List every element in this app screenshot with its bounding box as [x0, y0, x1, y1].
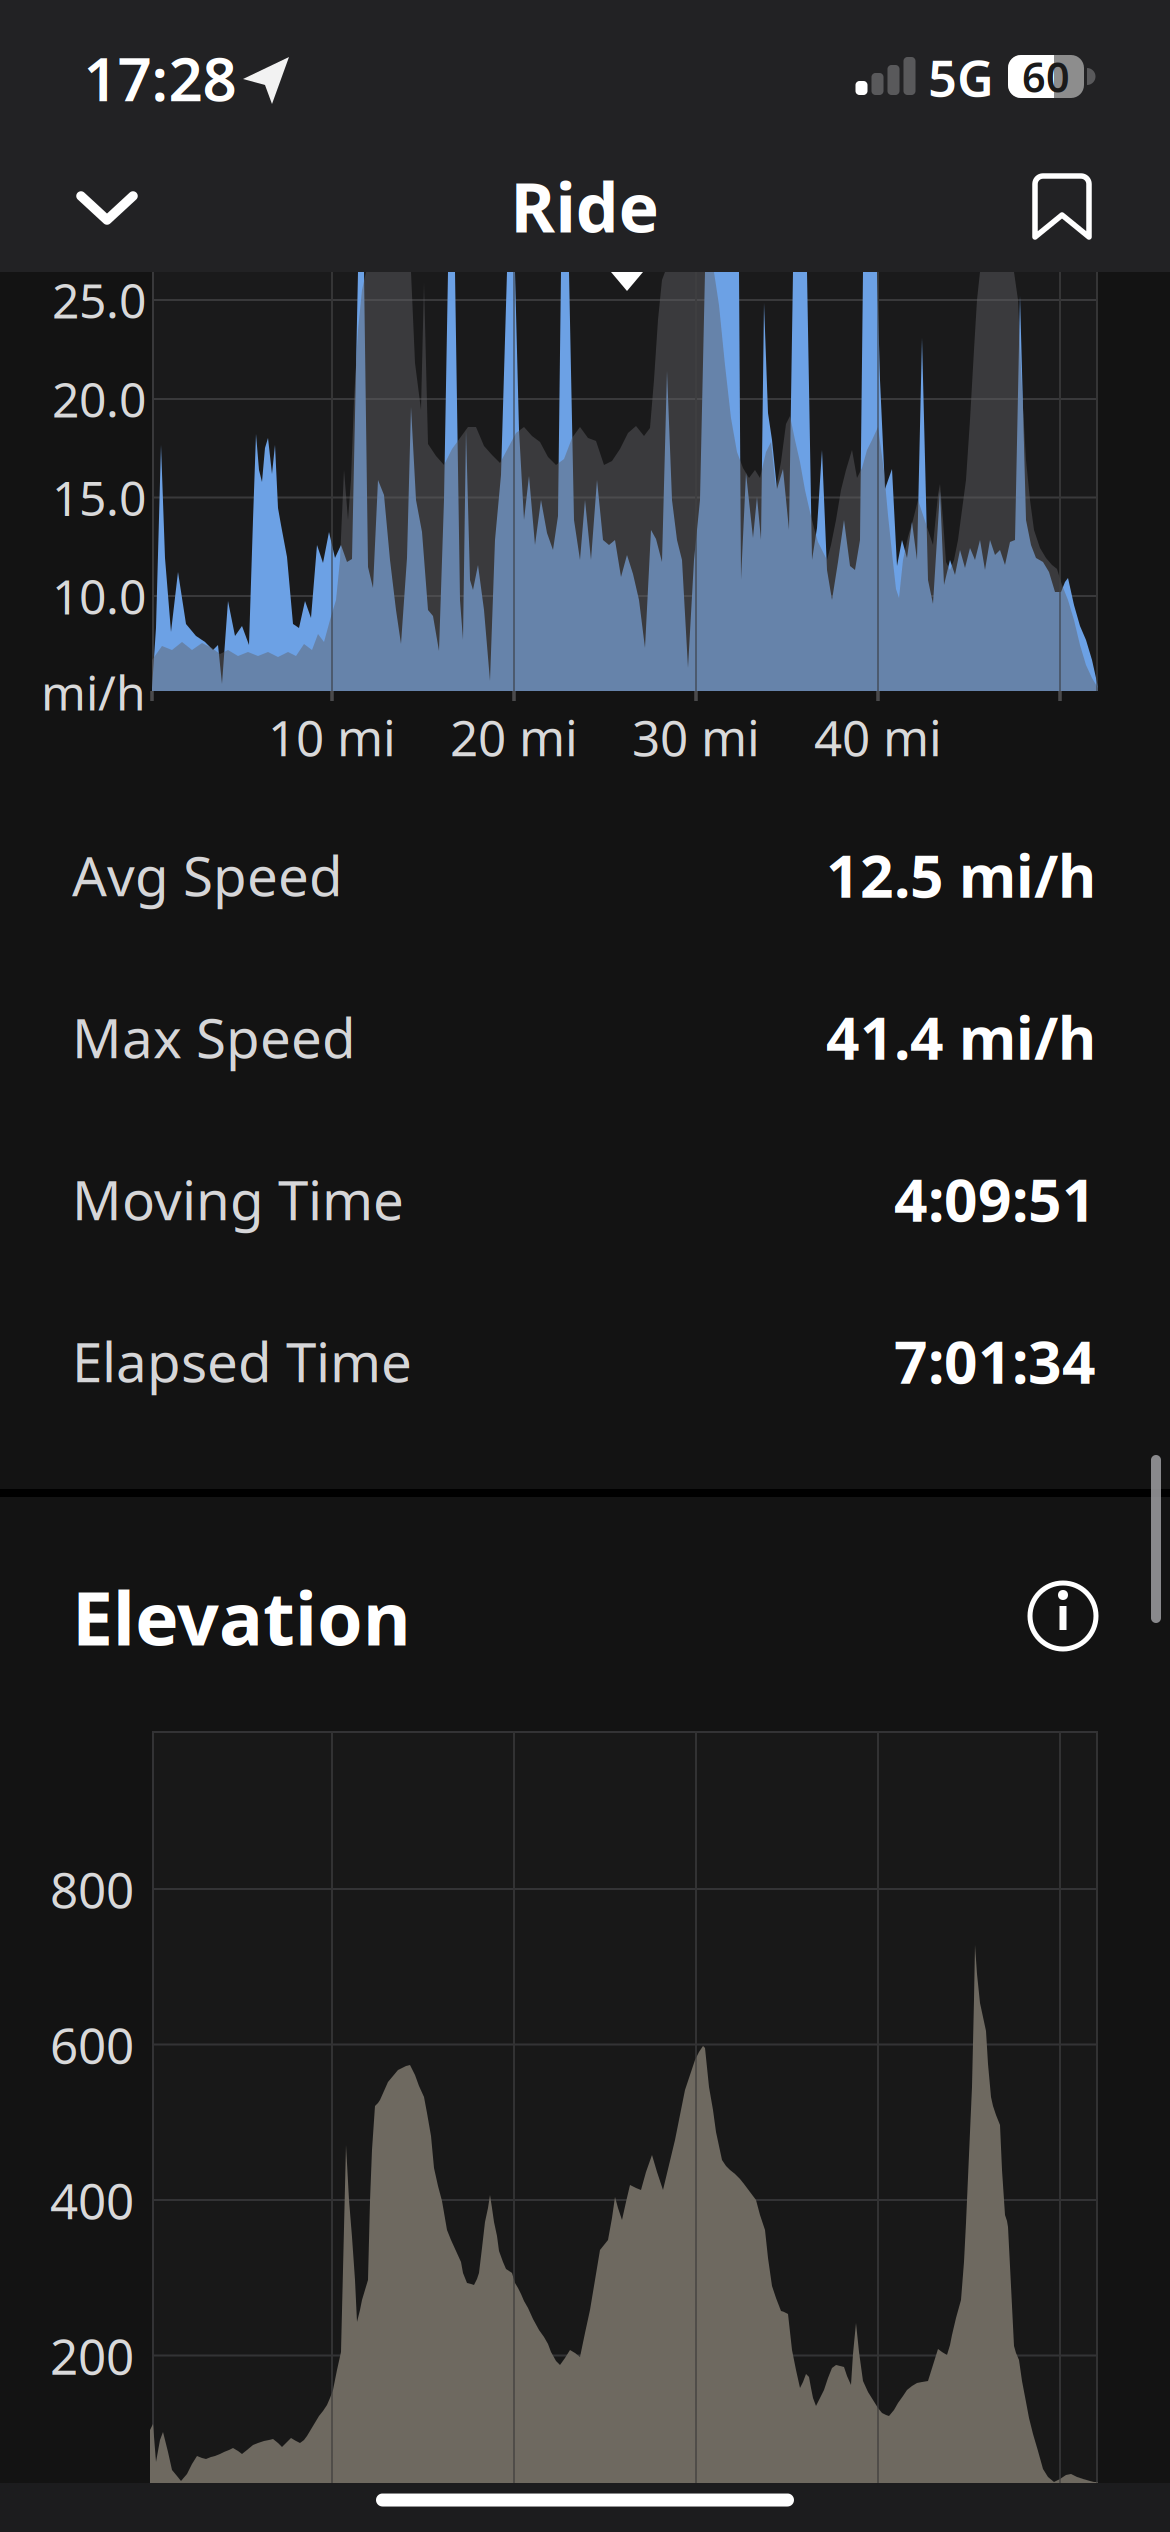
- staticText: 800: [50, 1856, 134, 1922]
- staticText: mi/h: [41, 660, 146, 724]
- staticText: 200: [50, 2323, 134, 2388]
- staticText: 30 mi: [632, 704, 760, 770]
- staticText: 10 mi: [268, 704, 396, 770]
- staticText: 17:28: [83, 38, 236, 118]
- staticText: Elevation: [72, 1568, 411, 1666]
- button[interactable]: Save: [1019, 163, 1105, 251]
- staticText: Ride: [510, 161, 659, 251]
- button[interactable]: Elevation info: [1023, 1576, 1103, 1656]
- staticText: Avg Speed: [72, 839, 343, 911]
- staticText: 400: [50, 2167, 134, 2233]
- button[interactable]: Close: [67, 174, 147, 242]
- staticText: 25.0: [52, 268, 146, 332]
- staticText: 10.0: [52, 564, 146, 628]
- staticText: 40 mi: [814, 704, 942, 770]
- staticText: 20.0: [52, 367, 146, 431]
- staticText: Elapsed Time: [72, 1325, 412, 1397]
- staticText: 15.0: [52, 466, 146, 529]
- staticText: 60: [1022, 49, 1070, 104]
- staticText: 5G: [928, 43, 994, 111]
- staticText: 20 mi: [450, 704, 578, 770]
- staticText: 41.4 mi/h: [826, 998, 1096, 1076]
- staticText: 7:01:34: [894, 1322, 1096, 1400]
- staticText: Moving Time: [72, 1163, 404, 1235]
- staticText: 4:09:51: [894, 1160, 1096, 1238]
- staticText: Max Speed: [72, 1001, 356, 1073]
- staticText: 12.5 mi/h: [826, 836, 1096, 914]
- staticText: 600: [50, 2012, 134, 2077]
